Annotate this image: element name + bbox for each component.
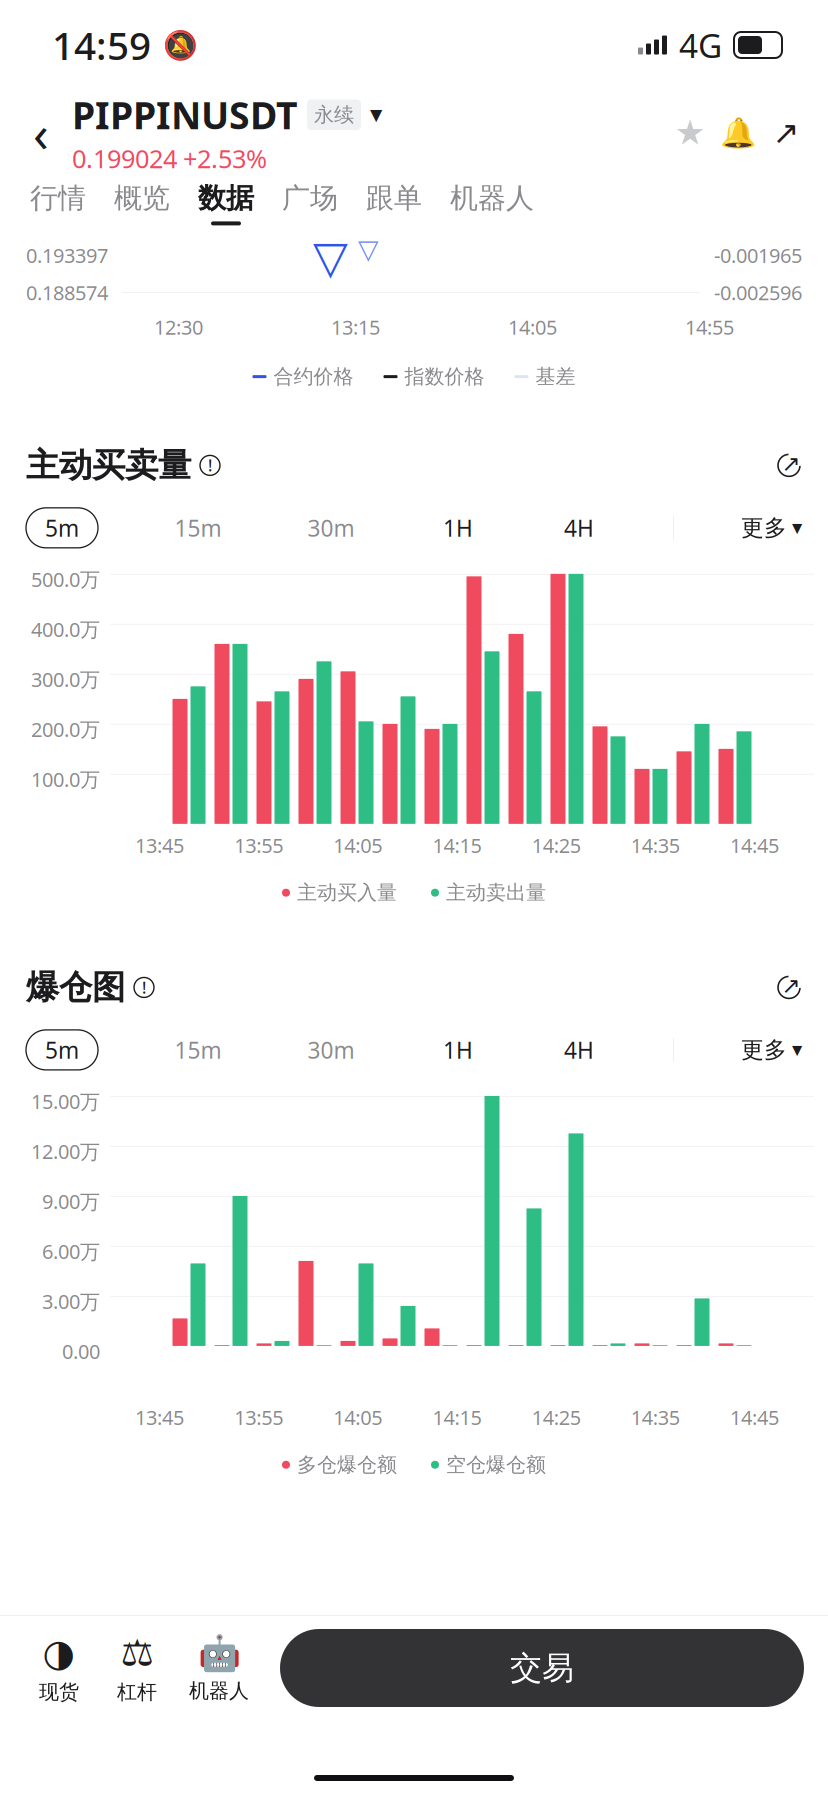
staticText: 行情	[30, 181, 86, 215]
button[interactable]: 4H	[552, 508, 606, 548]
button[interactable]: 5m	[26, 508, 98, 548]
button[interactable]: 30m	[298, 508, 364, 548]
staticText: 300.0万	[31, 666, 100, 692]
staticText: 0.00	[62, 1338, 100, 1364]
button[interactable]: 1H	[431, 1030, 485, 1070]
staticText: 5m	[45, 1035, 79, 1065]
button[interactable]: 机器人	[436, 175, 548, 231]
button[interactable]: 分享	[762, 108, 810, 158]
button[interactable]: 交易	[280, 1629, 804, 1707]
staticText: 🤖	[197, 1633, 240, 1672]
staticText: 概览	[114, 181, 170, 215]
staticText: 12.00万	[31, 1138, 100, 1164]
button[interactable]: 🤖	[176, 1629, 262, 1707]
staticText: 14:35	[631, 832, 680, 858]
button[interactable]: 行情	[16, 175, 100, 231]
staticText: ▽	[313, 231, 348, 283]
button[interactable]: 价格提醒	[714, 108, 762, 158]
staticText: 13:55	[234, 1404, 283, 1430]
staticText: PIPPINUSDT	[72, 90, 298, 140]
staticText: 🔕	[163, 29, 198, 61]
staticText: 广场	[282, 181, 338, 215]
staticText: 14:15	[432, 1404, 481, 1430]
button[interactable]: 说明	[134, 977, 154, 997]
button[interactable]: 返回	[18, 104, 64, 162]
staticText: 14:25	[532, 1404, 581, 1430]
staticText: 3.00万	[42, 1288, 100, 1314]
staticText: 14:15	[432, 832, 481, 858]
staticText: 合约价格	[273, 364, 353, 389]
staticText: 永续	[314, 102, 354, 127]
staticText: 100.0万	[31, 766, 100, 792]
staticText: 14:05	[333, 1404, 382, 1430]
staticText: 14:35	[631, 1404, 680, 1430]
button[interactable]: 更多	[741, 508, 802, 548]
staticText: 杠杆	[117, 1680, 157, 1704]
staticText: 14:05	[508, 314, 557, 340]
staticText: 5m	[45, 513, 79, 543]
button[interactable]: ⚖︎	[98, 1629, 176, 1707]
staticText: ▼	[792, 520, 802, 535]
button[interactable]: 数据	[184, 175, 268, 231]
staticText: 指数价格	[404, 364, 484, 389]
staticText: 1H	[443, 513, 473, 543]
staticText: 多仓爆仓额	[297, 1452, 397, 1477]
button[interactable]: 15m	[165, 508, 231, 548]
staticText: 0.199024	[72, 142, 177, 175]
staticText: 4H	[564, 513, 594, 543]
button[interactable]: 更多	[741, 1030, 802, 1070]
staticText: 现货	[39, 1680, 79, 1704]
staticText: 14:25	[532, 832, 581, 858]
staticText: 200.0万	[31, 716, 100, 742]
staticText: ‹	[33, 99, 49, 166]
staticText: 空仓爆仓额	[446, 1452, 546, 1477]
staticText: 14:05	[333, 832, 382, 858]
staticText: 15m	[174, 1035, 221, 1065]
staticText: ↗	[772, 114, 799, 151]
staticText: -0.002596	[714, 279, 802, 306]
staticText: 13:45	[135, 1404, 184, 1430]
staticText: 12:30	[154, 314, 203, 340]
button[interactable]: 全屏	[776, 452, 802, 478]
staticText: 30m	[307, 513, 354, 543]
staticText: ↗	[781, 973, 800, 998]
staticText: ↗	[781, 450, 800, 476]
staticText: !	[142, 977, 146, 998]
staticText: 0.193397	[26, 242, 108, 268]
staticText: +2.53%	[183, 142, 267, 175]
staticText: 主动卖出量	[446, 880, 546, 905]
button[interactable]: 1H	[431, 508, 485, 548]
button[interactable]: 说明	[200, 455, 220, 475]
button[interactable]: ◑	[20, 1629, 98, 1707]
staticText: -0.001965	[714, 242, 802, 268]
button[interactable]: 跟单	[352, 175, 436, 231]
staticText: ▽	[358, 234, 379, 264]
staticText: 30m	[307, 1035, 354, 1065]
button[interactable]: 30m	[298, 1030, 364, 1070]
staticText: 500.0万	[31, 566, 100, 592]
staticText: ⚖︎	[120, 1631, 153, 1674]
staticText: ★	[674, 113, 705, 152]
staticText: 13:55	[234, 832, 283, 858]
staticText: 更多	[741, 1036, 787, 1064]
staticText: 14:45	[730, 1404, 779, 1430]
staticText: 14:59	[52, 19, 151, 71]
staticText: 13:15	[331, 314, 380, 340]
button[interactable]: 概览	[100, 175, 184, 231]
staticText: 基差	[535, 364, 575, 389]
staticText: 400.0万	[31, 616, 100, 642]
button[interactable]: 广场	[268, 175, 352, 231]
staticText: 机器人	[450, 181, 534, 215]
button[interactable]: 15m	[165, 1030, 231, 1070]
button[interactable]: 收藏	[666, 108, 714, 158]
staticText: 机器人	[189, 1678, 249, 1703]
staticText: ◑	[42, 1631, 75, 1674]
button[interactable]: 5m	[26, 1030, 98, 1070]
staticText: 0.188574	[26, 279, 108, 306]
button[interactable]: 全屏	[776, 974, 802, 1000]
staticText: 更多	[741, 514, 787, 542]
staticText: ▼	[792, 1042, 802, 1057]
button[interactable]: 4H	[552, 1030, 606, 1070]
staticText: 🔔	[719, 116, 756, 149]
staticText: 主动买卖量	[26, 445, 191, 486]
